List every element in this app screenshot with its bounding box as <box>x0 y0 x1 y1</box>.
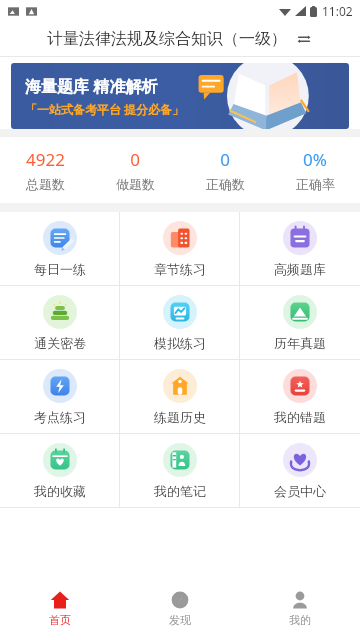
staticText: 我的 <box>289 613 311 627</box>
button[interactable]: 我的 <box>240 582 360 634</box>
button[interactable]: 考点练习 <box>0 360 120 433</box>
staticText: 首页 <box>49 613 71 627</box>
staticText: 总题数 <box>26 176 65 192</box>
button[interactable]: 0% <box>270 148 360 192</box>
button[interactable]: 每日一练 <box>0 212 120 285</box>
staticText: 海量题库 精准解析 <box>25 75 158 97</box>
staticText: 「一站式备考平台 提分必备」 <box>25 101 185 117</box>
staticText: 章节练习 <box>154 261 206 277</box>
staticText: 11:02 <box>322 3 353 19</box>
button[interactable]: 章节练习 <box>120 212 240 285</box>
staticText: 发现 <box>169 613 191 627</box>
staticText: 高频题库 <box>274 261 326 277</box>
staticText: 我的错题 <box>274 409 326 425</box>
button[interactable]: 切换科目 <box>295 30 313 48</box>
staticText: 每日一练 <box>34 261 86 277</box>
staticText: 会员中心 <box>274 483 326 499</box>
staticText: 我的收藏 <box>34 483 86 499</box>
button[interactable]: 4922 <box>0 148 90 192</box>
staticText: 我的笔记 <box>154 483 206 499</box>
button[interactable]: 发现 <box>120 582 240 634</box>
staticText: 练题历史 <box>154 409 206 425</box>
staticText: 0 <box>220 148 230 171</box>
button[interactable]: 我的收藏 <box>0 434 120 507</box>
button[interactable]: 0 <box>90 148 180 192</box>
staticText: 正确数 <box>206 176 245 192</box>
button[interactable]: 练题历史 <box>120 360 240 433</box>
staticText: 0% <box>303 148 327 171</box>
staticText: 0 <box>130 148 140 171</box>
staticText: 做题数 <box>116 176 155 192</box>
button[interactable]: 历年真题 <box>240 286 360 359</box>
staticText: 正确率 <box>296 176 335 192</box>
staticText: 通关密卷 <box>34 335 86 351</box>
staticText: 计量法律法规及综合知识（一级） <box>47 29 287 49</box>
button[interactable]: 会员中心 <box>240 434 360 507</box>
staticText: 考点练习 <box>34 409 86 425</box>
button[interactable]: 海量题库 精准解析 <box>11 63 349 129</box>
button[interactable]: 模拟练习 <box>120 286 240 359</box>
button[interactable]: 我的笔记 <box>120 434 240 507</box>
staticText: 历年真题 <box>274 335 326 351</box>
button[interactable]: 我的错题 <box>240 360 360 433</box>
staticText: 4922 <box>26 148 65 171</box>
button[interactable]: 首页 <box>0 582 120 634</box>
button[interactable]: 0 <box>180 148 270 192</box>
button[interactable]: 通关密卷 <box>0 286 120 359</box>
button[interactable]: 高频题库 <box>240 212 360 285</box>
staticText: 模拟练习 <box>154 335 206 351</box>
